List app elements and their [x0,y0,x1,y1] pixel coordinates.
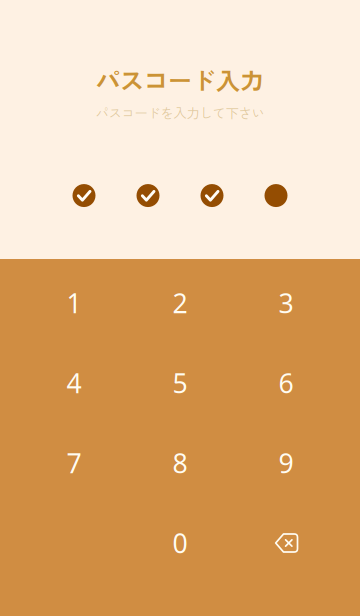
staticText: 5 [172,365,187,401]
staticText: 0 [172,525,187,561]
staticText: 6 [278,365,293,401]
button[interactable]: 9 [233,423,339,503]
staticText: 9 [278,445,293,481]
staticText: 3 [278,285,293,321]
staticText: 7 [66,445,81,481]
staticText: パスコードを入力して下さい [95,103,264,122]
button[interactable]: Delete [233,503,339,583]
button[interactable]: 2 [127,263,233,343]
button[interactable]: 5 [127,343,233,423]
button[interactable]: 6 [233,343,339,423]
staticText: パスコード入力 [96,62,264,97]
staticText: 1 [66,285,81,321]
button[interactable]: 3 [233,263,339,343]
button[interactable]: 7 [21,423,127,503]
staticText: 2 [172,285,187,321]
staticText: 8 [172,445,187,481]
staticText: 4 [66,365,81,401]
button[interactable]: 8 [127,423,233,503]
button[interactable]: 1 [21,263,127,343]
button[interactable]: 0 [127,503,233,583]
button[interactable]: 4 [21,343,127,423]
